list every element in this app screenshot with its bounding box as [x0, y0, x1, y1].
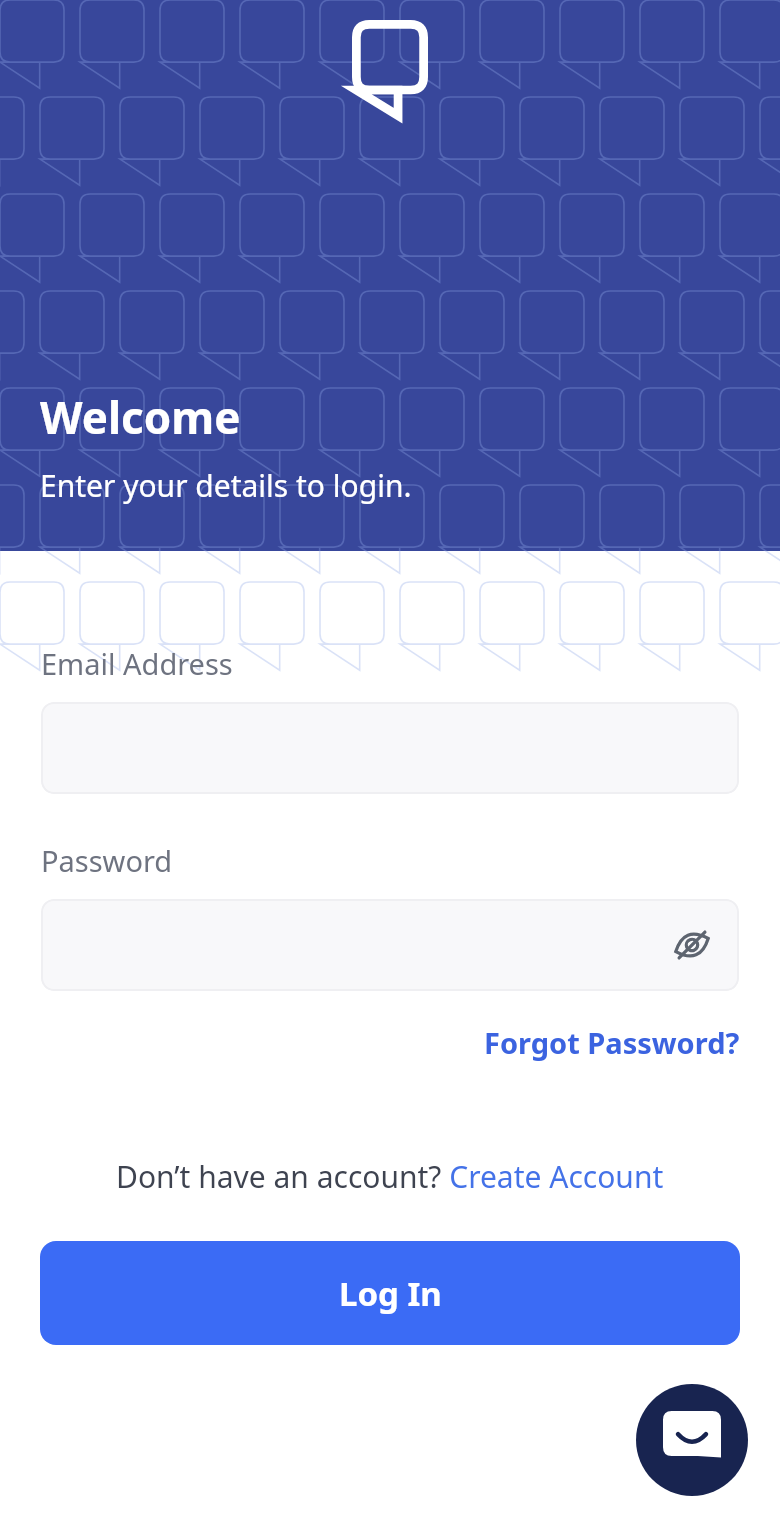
staticText: Welcome — [40, 387, 241, 447]
staticText: Log In — [339, 1271, 442, 1316]
button[interactable]: Show password — [41, 899, 739, 991]
button[interactable]: Log In — [40, 1241, 740, 1345]
staticText: Don’t have an account? Create Account — [116, 1156, 664, 1197]
staticText: Forgot Password? — [484, 1023, 740, 1062]
staticText: Password — [41, 841, 173, 880]
button[interactable]: Open chat — [636, 1384, 748, 1496]
button[interactable]: Forgot Password? — [480, 1015, 744, 1070]
button[interactable]: Don’t have an account? Create Account — [0, 1150, 780, 1203]
staticText: Enter your details to login. — [40, 465, 412, 506]
staticText: Email Address — [41, 644, 233, 683]
button[interactable]: Show password — [667, 920, 717, 970]
